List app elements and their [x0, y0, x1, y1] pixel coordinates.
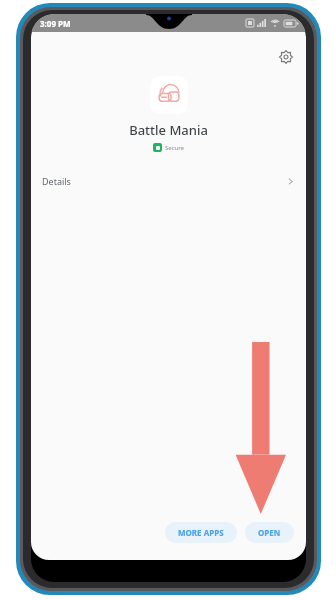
staticText: OPEN: [258, 527, 281, 538]
staticText: Secure: [165, 144, 185, 152]
staticText: Battle Mania: [129, 121, 208, 139]
staticText: MORE APPS: [178, 527, 224, 538]
button[interactable]: Settings: [271, 42, 301, 72]
staticText: Details: [42, 175, 71, 187]
button[interactable]: OPEN: [245, 522, 294, 543]
button[interactable]: MORE APPS: [165, 522, 237, 543]
button[interactable]: Details: [31, 166, 306, 196]
staticText: 3:09 PM: [40, 18, 71, 29]
